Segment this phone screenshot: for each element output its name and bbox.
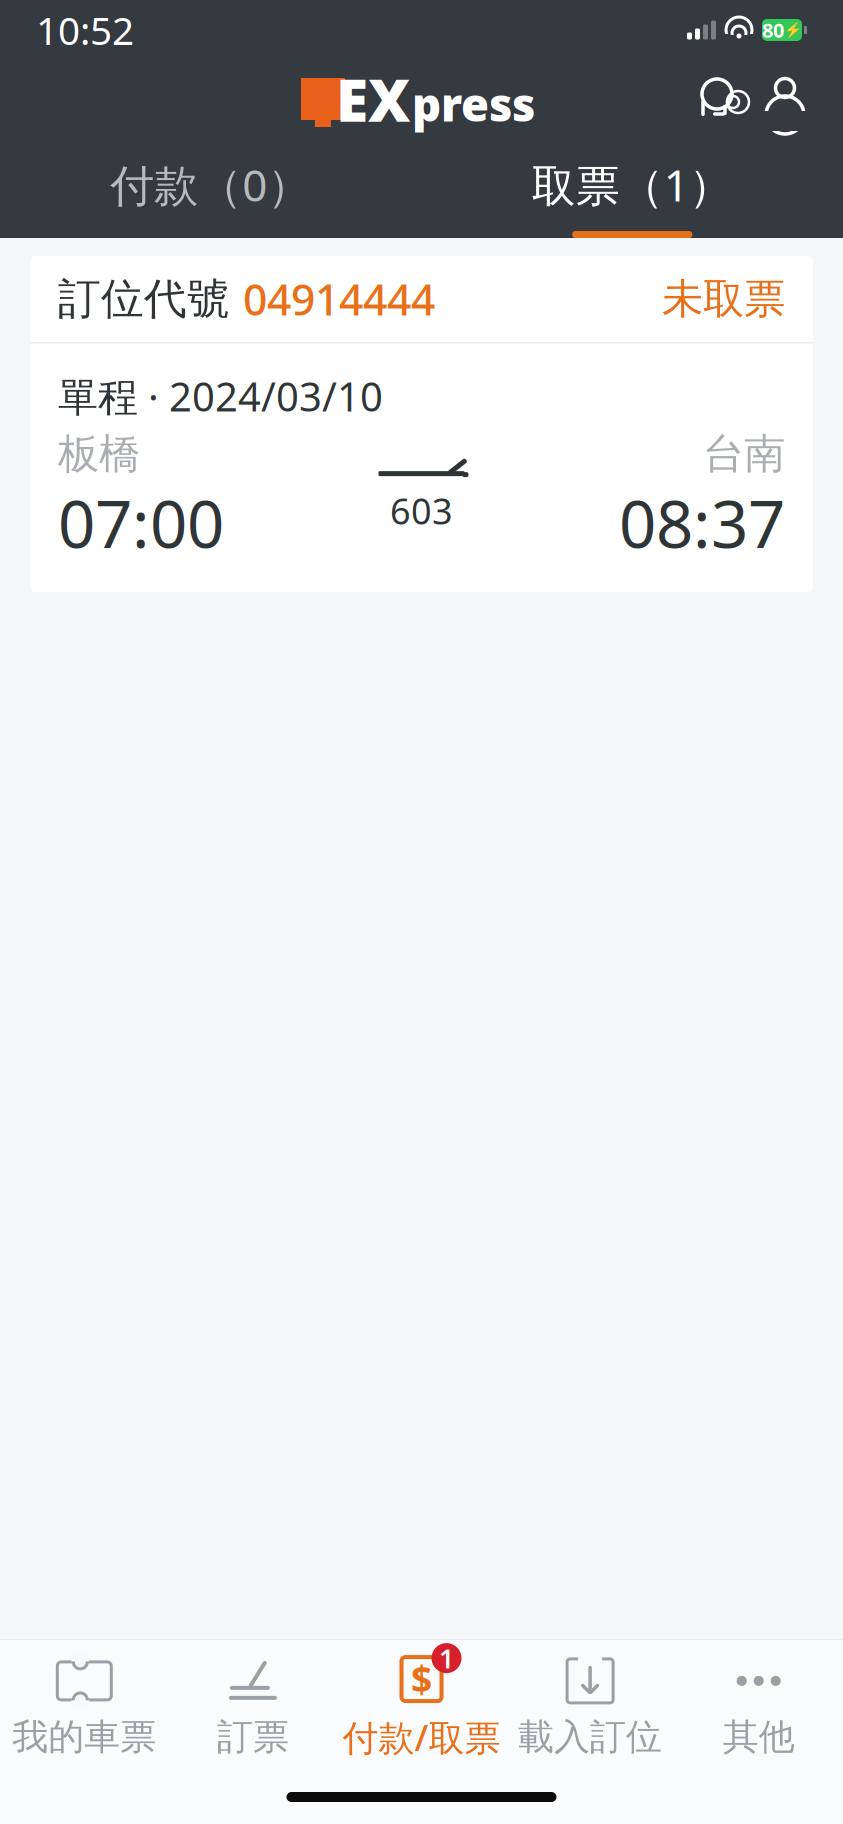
button[interactable]: 付款（0） (0, 138, 421, 238)
button[interactable]: 其他 (674, 1641, 843, 1769)
button[interactable]: 載入訂位 (506, 1641, 674, 1769)
staticText: press (412, 74, 535, 134)
staticText: 08:37 (619, 479, 785, 566)
staticText: 80 (762, 17, 784, 43)
staticText: $ (411, 1654, 432, 1704)
staticText: 載入訂位 (518, 1715, 662, 1759)
button[interactable]: 會員 (753, 67, 817, 131)
staticText: 單程 · 2024/03/10 (58, 369, 383, 423)
staticText: 付款（0） (110, 155, 311, 214)
staticText: 07:00 (58, 479, 224, 566)
staticText: EX (336, 60, 410, 138)
staticText: 訂位代號 (58, 273, 243, 325)
staticText: 板橋 (58, 429, 140, 479)
staticText: 付款/取票 (342, 1713, 500, 1761)
button[interactable]: 語音播報 (689, 67, 753, 131)
staticText: 訂票 (217, 1715, 289, 1759)
staticText: 台南 (703, 429, 785, 479)
button[interactable]: 我的車票 (0, 1641, 169, 1769)
staticText: 我的車票 (12, 1715, 156, 1759)
button[interactable]: 訂位代號 (30, 256, 813, 592)
staticText: 未取票 (662, 274, 785, 324)
staticText: 10:52 (36, 4, 134, 56)
staticText: 其他 (723, 1715, 795, 1759)
staticText: 取票（1） (532, 155, 733, 214)
button[interactable]: 取票（1） (421, 138, 843, 238)
staticText: 1 (439, 1640, 454, 1676)
button[interactable]: 訂票 (169, 1641, 337, 1769)
staticText: 603 (390, 487, 453, 534)
staticText: ⚡ (784, 22, 802, 38)
staticText: 04914444 (243, 271, 435, 327)
button[interactable]: $ (337, 1639, 506, 1771)
